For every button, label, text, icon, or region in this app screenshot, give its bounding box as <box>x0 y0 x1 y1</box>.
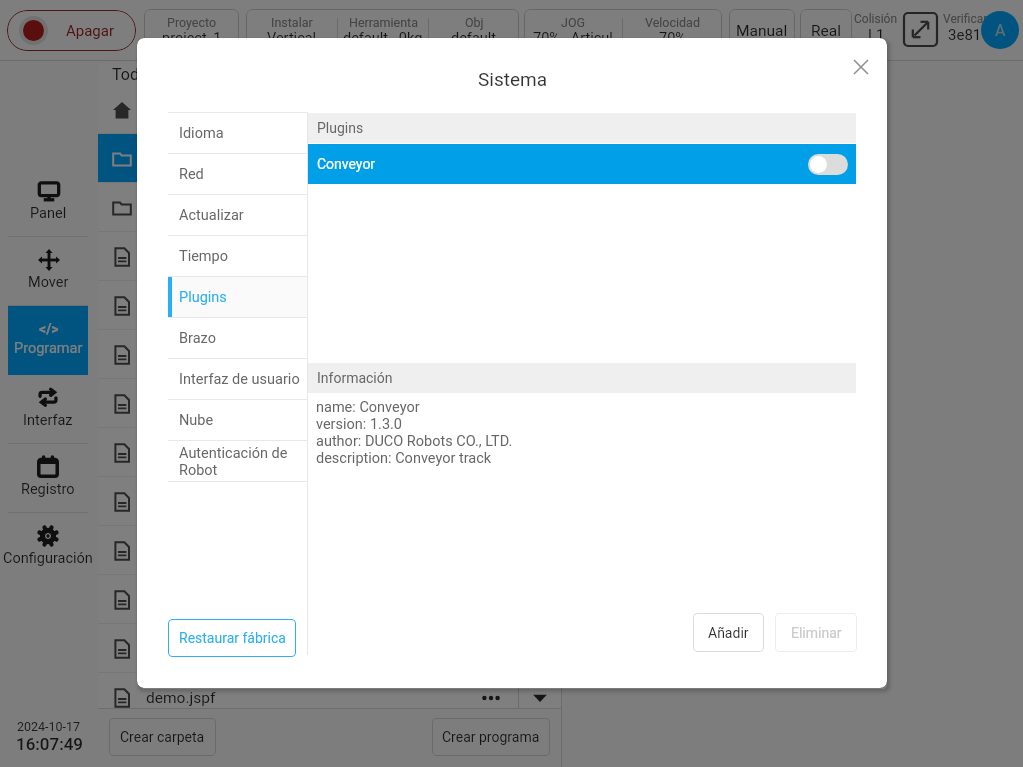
button[interactable]: Apagar <box>7 10 136 51</box>
button[interactable] <box>98 232 561 281</box>
button[interactable] <box>8 513 88 582</box>
button[interactable]: Activar Conveyor <box>808 154 848 175</box>
button[interactable]: demo.jspf <box>98 673 561 722</box>
staticText: Idioma <box>179 125 224 142</box>
staticText: Autenticación de Robot <box>179 445 305 479</box>
button[interactable]: Manual <box>729 9 795 52</box>
button[interactable] <box>98 526 561 575</box>
staticText: Sistema <box>478 68 547 90</box>
button[interactable]: A <box>981 11 1019 49</box>
button[interactable]: Restaurar fábrica <box>168 619 296 657</box>
staticText: Crear carpeta <box>120 729 205 745</box>
staticText: version: 1.3.0 <box>316 416 403 433</box>
staticText: Red <box>179 166 204 183</box>
staticText: Herramienta <box>349 15 418 30</box>
button[interactable] <box>98 183 561 232</box>
button[interactable]: Más opciones <box>464 673 518 722</box>
staticText: Interfaz <box>23 412 73 429</box>
staticText: Panel <box>30 205 67 222</box>
staticText: default <box>451 30 497 47</box>
staticText: Obj <box>465 15 484 30</box>
staticText: Registro <box>21 481 75 498</box>
staticText: Brazo <box>179 330 216 347</box>
staticText: Velocidad <box>645 15 700 30</box>
staticText: 16:07:49 <box>16 734 83 754</box>
button[interactable]: Plugins <box>168 277 307 318</box>
staticText: </> <box>39 321 59 337</box>
button[interactable]: Conveyor <box>308 144 856 184</box>
staticText: Vertical <box>267 30 317 47</box>
staticText: Interfaz de usuario <box>179 371 300 388</box>
button[interactable]: Autenticación de Robot <box>168 441 307 482</box>
staticText: 3e81 <box>948 26 982 44</box>
button[interactable] <box>98 281 561 330</box>
staticText: Restaurar fábrica <box>179 630 286 646</box>
staticText: Conveyor <box>317 156 376 172</box>
button[interactable] <box>8 444 88 513</box>
button[interactable] <box>98 624 561 673</box>
staticText: Eliminar <box>791 625 842 641</box>
staticText: Añadir <box>708 625 749 641</box>
staticText: name: Conveyor <box>316 399 420 416</box>
button[interactable] <box>98 86 561 134</box>
staticText: Verificar <box>943 12 988 26</box>
staticText: Manual <box>736 22 788 40</box>
button[interactable]: Tiempo <box>168 236 307 277</box>
staticText: A <box>995 21 1006 40</box>
staticText: Información <box>317 370 393 386</box>
button[interactable] <box>98 428 561 477</box>
button[interactable] <box>98 477 561 526</box>
staticText: Configuración <box>3 550 93 567</box>
button[interactable]: Instalar <box>246 9 519 52</box>
staticText: author: DUCO Robots CO., LTD. <box>316 433 513 450</box>
staticText: Programar <box>14 340 83 357</box>
staticText: Apagar <box>66 22 115 40</box>
button[interactable]: Actualizar <box>168 195 307 236</box>
button[interactable]: Brazo <box>168 318 307 359</box>
button[interactable]: Añadir <box>693 613 764 652</box>
staticText: Plugins <box>179 289 227 306</box>
staticText: Real <box>811 22 841 40</box>
button[interactable]: Cerrar <box>847 53 875 81</box>
staticText: default 0kg <box>343 30 423 47</box>
staticText: Colisión <box>854 12 898 26</box>
staticText: Plugins <box>317 120 364 136</box>
button[interactable] <box>8 306 88 375</box>
staticText: 70% <box>659 30 686 47</box>
button[interactable]: Crear programa <box>432 718 550 756</box>
staticText: Todo <box>112 65 149 84</box>
staticText: Proyecto <box>167 15 217 30</box>
staticText: Tiempo <box>179 248 228 265</box>
button[interactable]: Proyecto <box>144 9 239 52</box>
button[interactable]: Red <box>168 154 307 195</box>
staticText: JOG <box>561 15 586 30</box>
button[interactable] <box>98 379 561 428</box>
staticText: Mover <box>28 274 69 291</box>
staticText: 70% Articul <box>533 30 613 47</box>
button[interactable]: Pantalla completa <box>903 12 938 47</box>
staticText: L1 <box>868 26 885 44</box>
button[interactable] <box>8 375 88 444</box>
button[interactable] <box>98 575 561 624</box>
staticText: Crear programa <box>442 729 540 745</box>
button[interactable]: Expandir <box>519 673 561 722</box>
button[interactable] <box>8 168 88 237</box>
staticText: demo.jspf <box>146 689 216 707</box>
button[interactable]: Idioma <box>168 113 307 154</box>
button[interactable]: Crear carpeta <box>109 718 216 756</box>
button[interactable]: Interfaz de usuario <box>168 359 307 400</box>
button[interactable] <box>98 134 561 183</box>
button[interactable]: Real <box>800 9 852 52</box>
staticText: Nube <box>179 412 214 429</box>
staticText: Actualizar <box>179 207 244 224</box>
button[interactable]: Eliminar <box>775 613 857 652</box>
staticText: 2024-10-17 <box>17 719 81 734</box>
staticText: Instalar <box>271 15 313 30</box>
button[interactable]: JOG <box>524 9 722 52</box>
button[interactable]: Nube <box>168 400 307 441</box>
button[interactable] <box>98 330 561 379</box>
staticText: project_1 <box>162 30 222 47</box>
staticText: description: Conveyor track <box>316 450 492 467</box>
button[interactable] <box>8 237 88 306</box>
